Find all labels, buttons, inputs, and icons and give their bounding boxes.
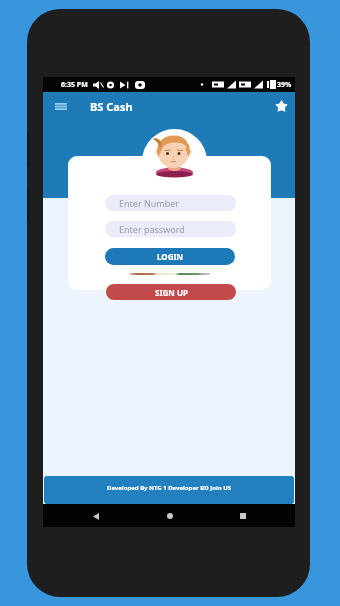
staticText: 6:35 PM (61, 80, 88, 90)
staticText: Enter password (119, 223, 185, 235)
staticText: BS Cash (90, 99, 133, 114)
button[interactable]: Back (85, 505, 107, 527)
button[interactable]: SIGN UP (106, 284, 236, 300)
staticText: Enter Number (119, 197, 180, 209)
staticText: 39% (277, 80, 292, 90)
button[interactable]: Notifications (271, 96, 291, 116)
button[interactable]: Developed By NTG 1 Developer BD Join US (44, 476, 294, 504)
button[interactable]: Recents (232, 505, 254, 527)
button[interactable]: Home (159, 505, 181, 527)
button[interactable]: Enter password (105, 221, 236, 237)
staticText: Developed By NTG 1 Developer BD Join US (107, 484, 232, 492)
button[interactable]: Menu (49, 96, 73, 116)
staticText: LOGIN (157, 251, 184, 262)
button[interactable]: LOGIN (105, 248, 235, 265)
button[interactable]: Enter Number (105, 195, 236, 211)
staticText: SIGN UP (155, 287, 188, 298)
